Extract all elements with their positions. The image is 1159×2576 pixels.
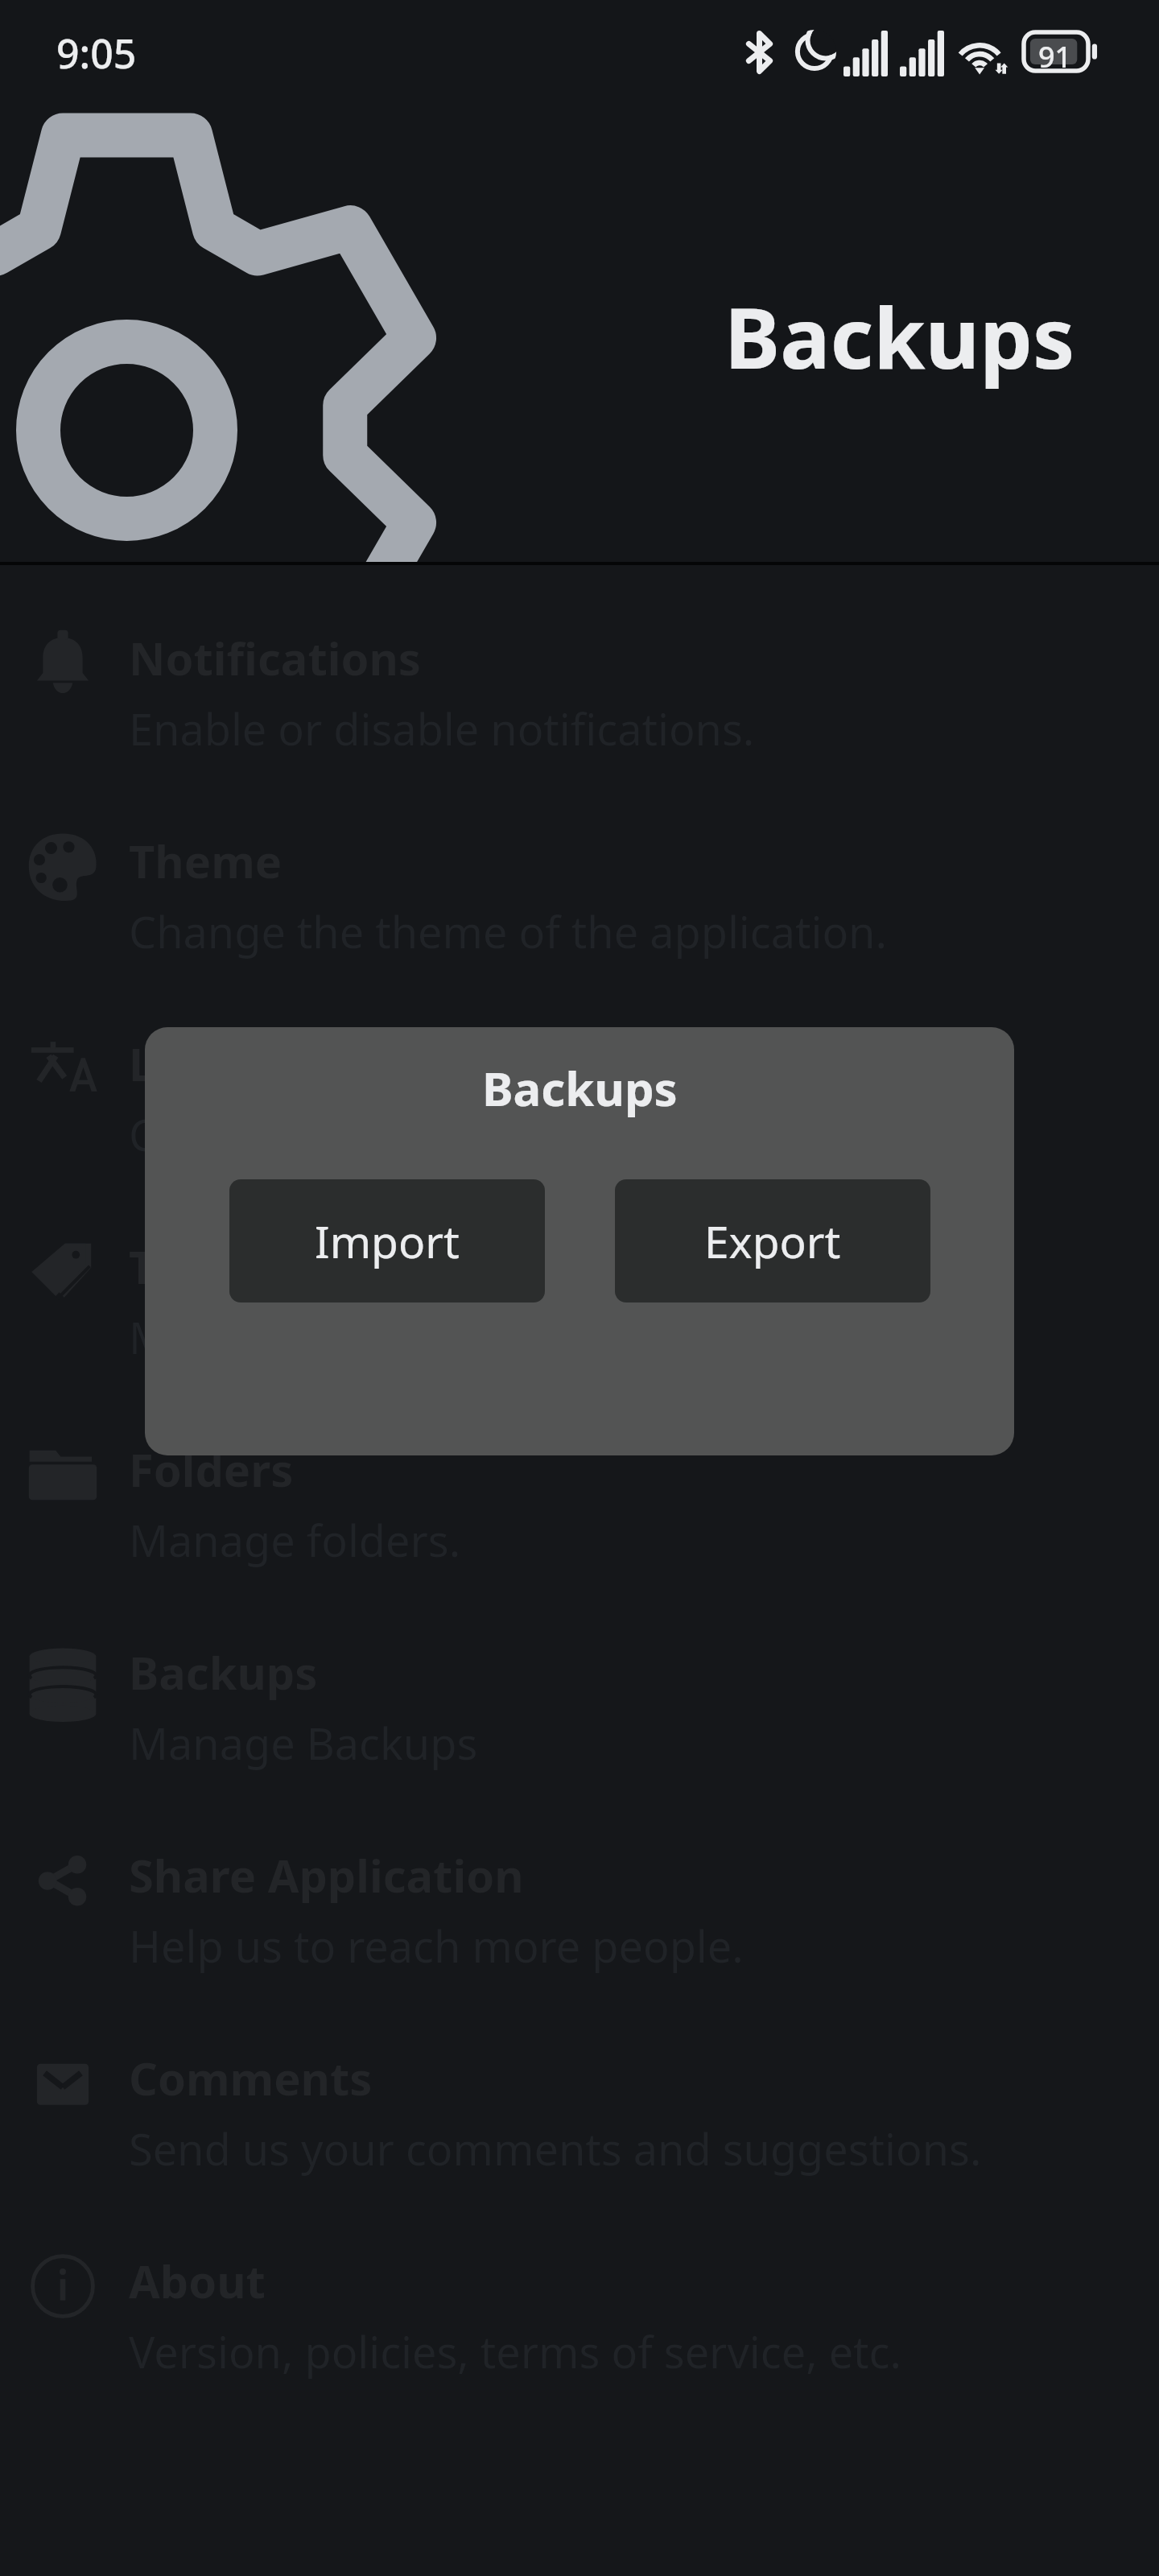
other: Notifications xyxy=(27,628,98,699)
staticText: Send us your comments and suggestions. xyxy=(129,2119,982,2178)
other: Folders xyxy=(27,1439,98,1510)
staticText: Change the language. xyxy=(129,1104,579,1164)
staticText: Notifications xyxy=(129,627,421,688)
staticText: About xyxy=(129,2250,266,2311)
staticText: Backups xyxy=(724,279,1075,394)
other: Backups xyxy=(27,1642,98,1713)
staticText: Manage folders. xyxy=(129,1510,461,1570)
other: Comments xyxy=(27,2048,98,2119)
staticText: Backups xyxy=(482,1056,678,1120)
button[interactable]: Folders xyxy=(0,1407,1159,1610)
button[interactable]: Tags xyxy=(0,1204,1159,1407)
staticText: Import xyxy=(315,1211,460,1271)
staticText: Share Application xyxy=(129,1844,524,1905)
staticText: Help us to reach more people. xyxy=(129,1916,744,1975)
staticText: 9:05 xyxy=(56,26,137,80)
other: Language xyxy=(27,1034,98,1104)
staticText: Export xyxy=(704,1211,841,1271)
staticText: Manage tags. xyxy=(129,1307,406,1367)
staticText: Version, policies, terms of service, etc… xyxy=(129,2322,902,2381)
staticText: 91 xyxy=(1038,37,1072,76)
staticText: Tags xyxy=(129,1236,229,1297)
other: Theme xyxy=(27,831,98,902)
staticText: Language xyxy=(129,1033,351,1094)
staticText: Manage Backups xyxy=(129,1713,478,1773)
staticText: Change the theme of the application. xyxy=(129,902,887,961)
staticText: Theme xyxy=(129,830,283,891)
button[interactable]: Language xyxy=(0,1001,1159,1204)
other: Settings xyxy=(0,0,1159,562)
other: About xyxy=(27,2251,98,2322)
other: Tags xyxy=(27,1236,98,1307)
staticText: Enable or disable notifications. xyxy=(129,699,755,758)
button[interactable]: Export xyxy=(615,1179,930,1302)
staticText: Comments xyxy=(129,2047,373,2108)
button[interactable]: Import xyxy=(229,1179,545,1302)
other: Backups dialog xyxy=(145,1027,1014,1455)
staticText: Backups xyxy=(129,1641,318,1703)
staticText: Folders xyxy=(129,1439,294,1500)
other: Share Application xyxy=(27,1845,98,1916)
